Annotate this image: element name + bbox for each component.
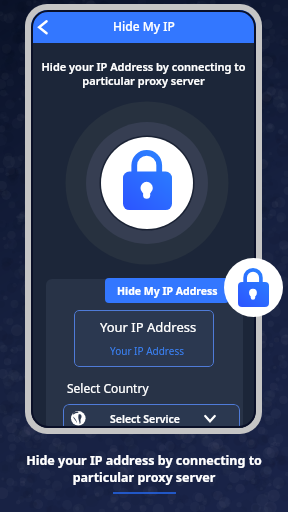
button[interactable]: Your IP Address <box>74 310 214 367</box>
button[interactable]: Back <box>33 14 57 40</box>
staticText: Your IP Address <box>100 318 197 336</box>
staticText: Hide your IP Address by connecting to pa… <box>31 59 256 88</box>
button[interactable]: Hide My IP Address <box>105 278 229 303</box>
staticText: Hide My IP Address <box>117 284 218 298</box>
button[interactable]: Secure lock <box>224 258 283 317</box>
staticText: Hide your IP address by connecting to pa… <box>0 452 288 485</box>
staticText: Select Country <box>67 380 149 396</box>
button[interactable]: Select Service <box>63 404 240 428</box>
staticText: Select Service <box>110 412 180 426</box>
staticText: Hide My IP <box>113 18 175 34</box>
staticText: Your IP Address <box>110 344 184 358</box>
